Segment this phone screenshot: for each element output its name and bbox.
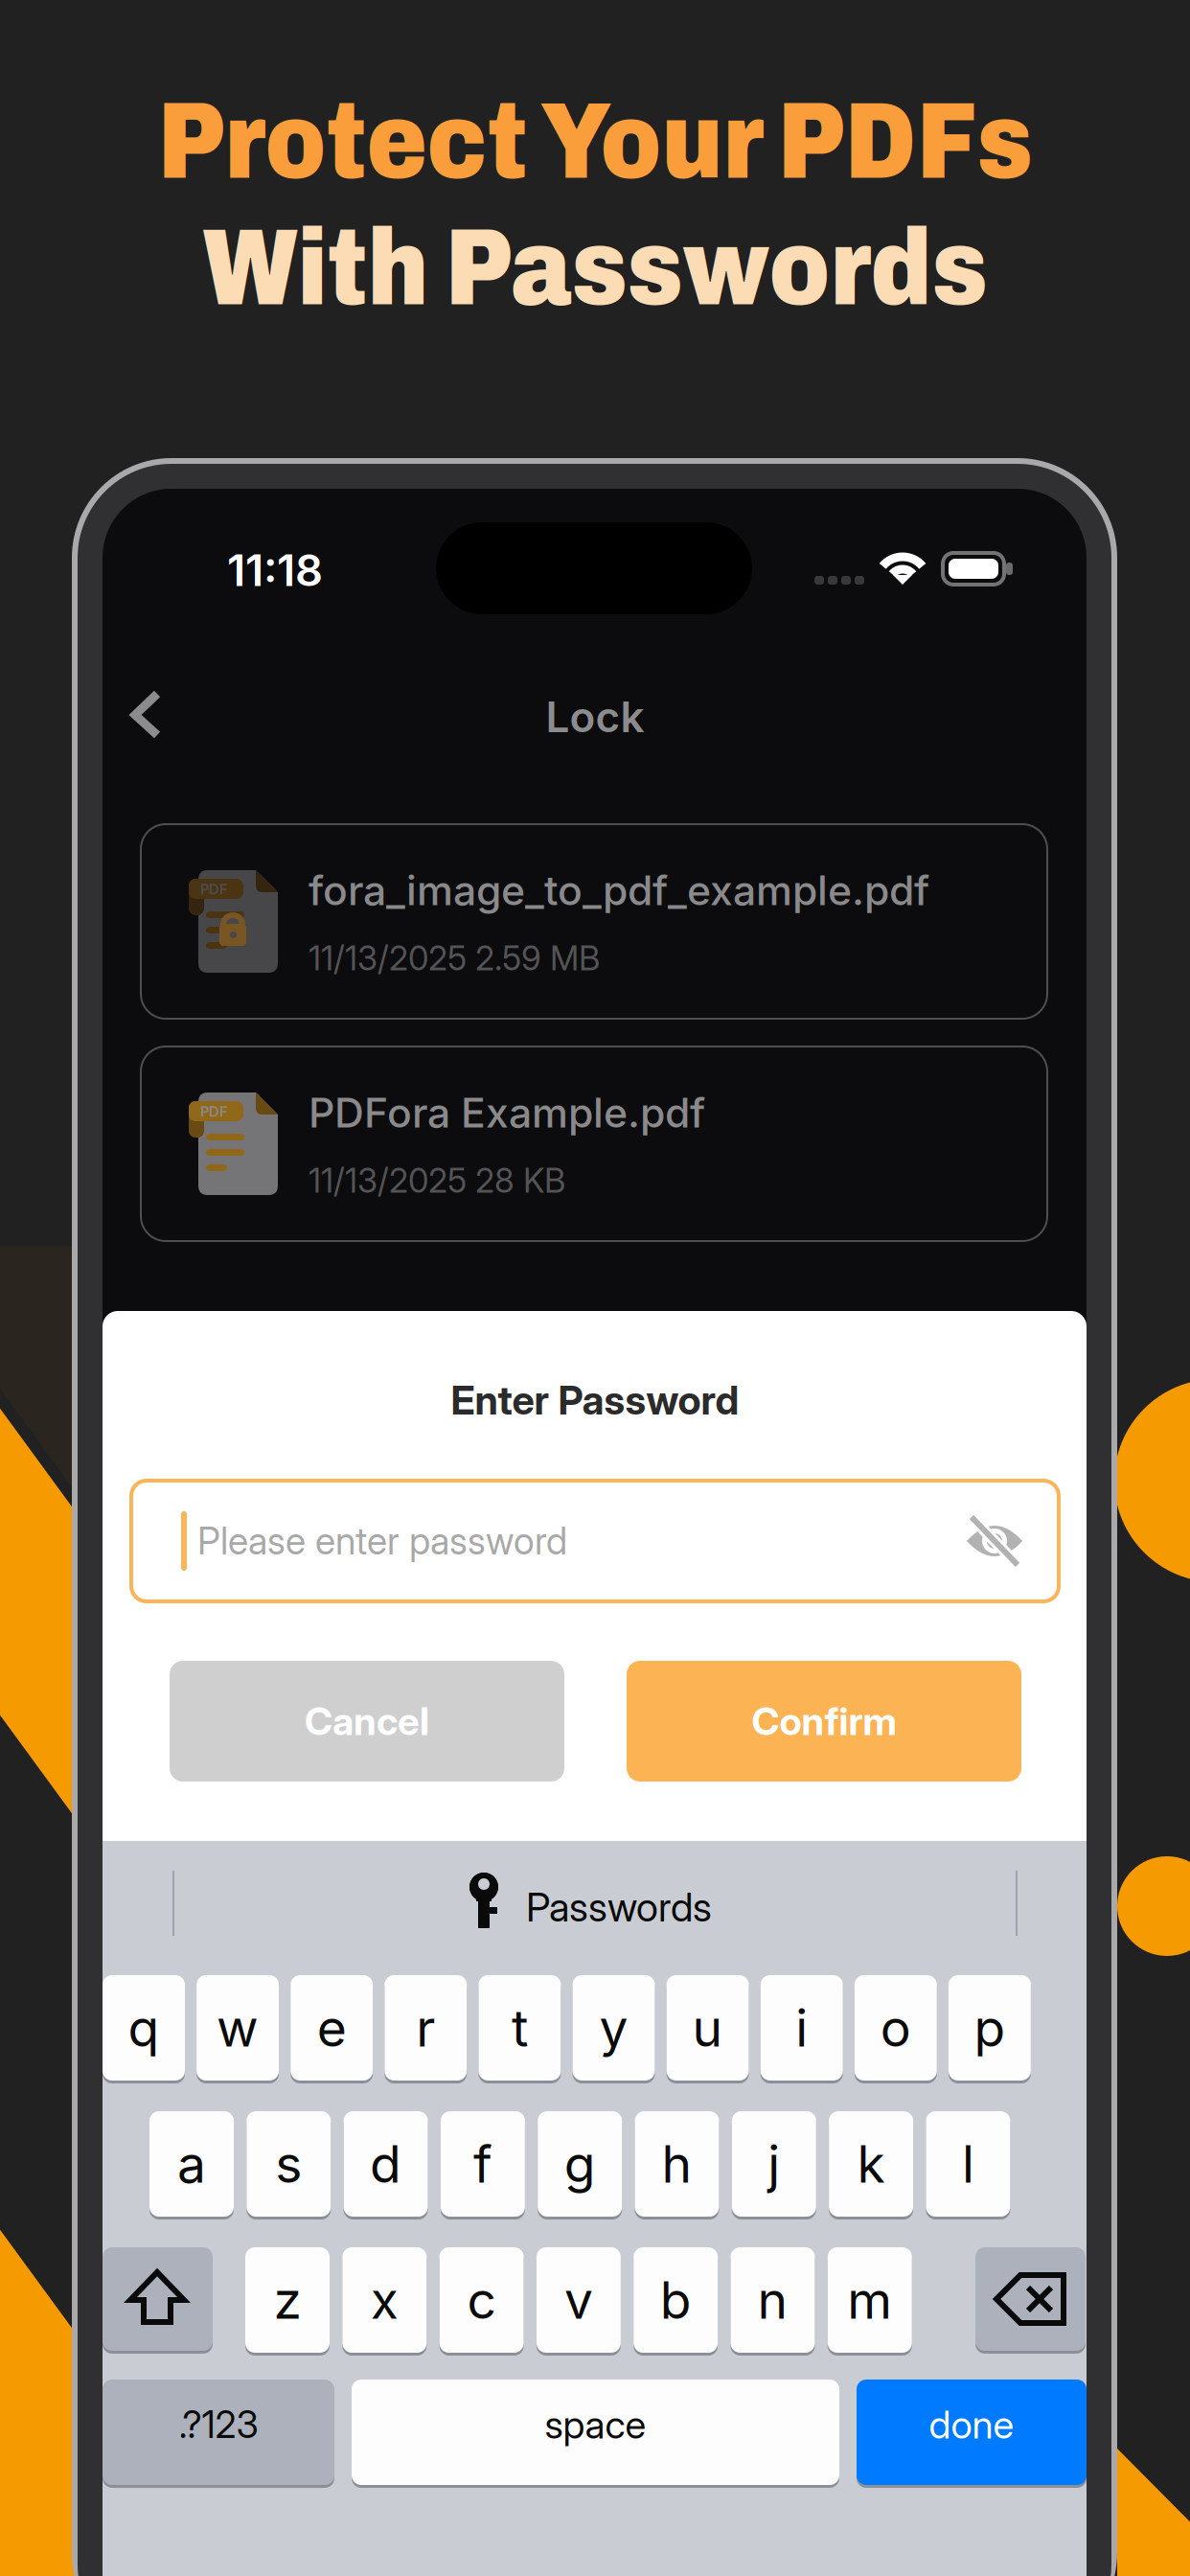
button[interactable]: l [0, 0, 1190, 2576]
button[interactable]: n [0, 0, 1190, 2576]
button[interactable]: z [0, 0, 1190, 2576]
button[interactable]: g [0, 0, 1190, 2576]
button[interactable]: m [0, 0, 1190, 2576]
button[interactable]: x [0, 0, 1190, 2576]
button[interactable]: u [0, 0, 1190, 2576]
button[interactable]: space [0, 0, 1190, 2576]
staticText: 11:18 [227, 544, 323, 597]
staticText: d [370, 2133, 402, 2195]
staticText: l [962, 2133, 974, 2195]
button[interactable]: k [0, 0, 1190, 2576]
staticText: PDF [200, 1103, 228, 1120]
button[interactable]: Shift [0, 0, 1190, 2576]
staticText: m [847, 2269, 892, 2331]
staticText: With Passwords [203, 210, 987, 327]
button[interactable]: r [0, 0, 1190, 2576]
button[interactable]: c [0, 0, 1190, 2576]
staticText: Confirm [752, 1698, 896, 1744]
staticText: fora_image_to_pdf_example.pdf [309, 866, 929, 915]
staticText: a [177, 2133, 206, 2195]
staticText: done [929, 2401, 1014, 2448]
staticText: Protect Your PDFs [158, 83, 1032, 200]
staticText: Please enter password [197, 1519, 567, 1563]
staticText: Passwords [478, 1883, 712, 1931]
button[interactable]: f [0, 0, 1190, 2576]
staticText: i [795, 1997, 808, 2059]
button[interactable]: e [0, 0, 1190, 2576]
staticText: w [217, 1997, 259, 2059]
staticText: g [564, 2133, 596, 2195]
staticText: t [512, 1997, 528, 2059]
staticText: 11/13/2025 2.59 MB [309, 938, 600, 978]
button[interactable]: PDF [0, 0, 1190, 2576]
button[interactable]: done [0, 0, 1190, 2576]
staticText: PDFora Example.pdf [309, 1088, 705, 1137]
staticText: k [857, 2133, 885, 2195]
staticText: o [880, 1997, 911, 2059]
button[interactable]: t [0, 0, 1190, 2576]
button[interactable]: Delete [0, 0, 1190, 2576]
button[interactable]: Cancel [0, 0, 1190, 2576]
button[interactable]: b [0, 0, 1190, 2576]
button[interactable]: Show password [0, 0, 1190, 2576]
staticText: Lock [546, 691, 644, 742]
button[interactable]: PDF [0, 0, 1190, 2576]
staticText: c [467, 2269, 496, 2331]
button[interactable]: d [0, 0, 1190, 2576]
button[interactable]: w [0, 0, 1190, 2576]
button[interactable]: Confirm [0, 0, 1190, 2576]
button[interactable]: p [0, 0, 1190, 2576]
staticText: u [692, 1997, 723, 2059]
staticText: x [371, 2269, 398, 2331]
staticText: y [599, 1997, 628, 2059]
staticText: q [128, 1997, 160, 2059]
staticText: n [757, 2269, 788, 2331]
button[interactable]: v [0, 0, 1190, 2576]
staticText: PDF [200, 881, 228, 898]
staticText: v [564, 2269, 593, 2331]
button[interactable]: q [0, 0, 1190, 2576]
staticText: b [660, 2269, 691, 2331]
staticText: 11/13/2025 28 KB [309, 1161, 565, 1201]
staticText: space [545, 2401, 646, 2448]
button[interactable]: s [0, 0, 1190, 2576]
button[interactable]: Back [0, 0, 1190, 2576]
staticText: r [416, 1997, 435, 2059]
staticText: h [662, 2133, 692, 2195]
button[interactable]: j [0, 0, 1190, 2576]
staticText: .?123 [179, 2402, 258, 2447]
staticText: Enter Password [451, 1376, 739, 1424]
staticText: z [274, 2269, 301, 2331]
button[interactable]: h [0, 0, 1190, 2576]
staticText: Cancel [305, 1698, 429, 1744]
button[interactable]: .?123 [0, 0, 1190, 2576]
staticText: f [473, 2133, 492, 2195]
staticText: s [275, 2133, 302, 2195]
button[interactable]: o [0, 0, 1190, 2576]
staticText: p [974, 1997, 1005, 2059]
button[interactable]: i [0, 0, 1190, 2576]
staticText: e [317, 1997, 347, 2059]
button[interactable]: a [0, 0, 1190, 2576]
button[interactable]: y [0, 0, 1190, 2576]
staticText: j [768, 2133, 780, 2195]
